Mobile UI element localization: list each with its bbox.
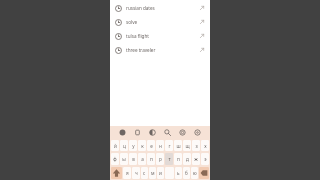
button[interactable]: и: [157, 167, 164, 179]
staticText: и: [159, 170, 162, 176]
staticText: д: [186, 156, 189, 162]
other: Insert russian dates: [199, 5, 205, 11]
button[interactable]: ж: [192, 153, 200, 165]
staticText: ы: [122, 156, 126, 162]
button[interactable]: щ: [183, 140, 191, 151]
button[interactable]: Shift: [111, 167, 122, 179]
button[interactable]: в: [129, 153, 137, 165]
staticText: ф: [113, 156, 117, 162]
button[interactable]: ф: [111, 153, 119, 165]
staticText: в: [132, 156, 135, 162]
button[interactable]: russian dates: [110, 1, 210, 15]
staticText: ч: [135, 170, 138, 176]
button[interactable]: Theme: [147, 127, 158, 138]
staticText: tulsa flight: [126, 33, 149, 39]
button[interactable]: с: [141, 167, 148, 179]
button[interactable]: ч: [132, 167, 140, 179]
button[interactable]: у: [129, 140, 137, 151]
button[interactable]: ы: [120, 153, 128, 165]
staticText: т: [168, 156, 171, 162]
staticText: е: [150, 143, 153, 149]
button[interactable]: к: [138, 140, 146, 151]
staticText: я: [126, 170, 129, 176]
button[interactable]: х: [201, 140, 209, 151]
staticText: ю: [193, 170, 197, 176]
button[interactable]: three traveler: [110, 43, 210, 57]
other: Insert tulsa flight: [199, 33, 205, 39]
button[interactable]: я: [123, 167, 131, 179]
staticText: х: [204, 143, 207, 149]
other: Insert three traveler: [199, 47, 205, 53]
button[interactable]: ц: [120, 140, 128, 151]
staticText: ш: [176, 143, 181, 149]
button[interactable]: п: [174, 153, 182, 165]
staticText: р: [159, 156, 162, 162]
staticText: г: [168, 143, 171, 149]
button[interactable]: tulsa flight: [110, 29, 210, 43]
button[interactable]: г: [165, 140, 173, 151]
staticText: к: [141, 143, 144, 149]
button[interactable]: Emoji: [117, 127, 128, 138]
button[interactable]: т: [165, 153, 173, 165]
button[interactable]: Backspace: [199, 167, 209, 179]
staticText: russian dates: [126, 5, 155, 11]
button[interactable]: Search: [162, 127, 173, 138]
button[interactable]: э: [201, 153, 209, 165]
staticText: у: [132, 143, 135, 149]
staticText: three traveler: [126, 47, 156, 53]
staticText: щ: [185, 143, 190, 149]
button[interactable]: д: [183, 153, 191, 165]
button[interactable]: б: [183, 167, 190, 179]
staticText: solve: [126, 19, 138, 25]
staticText: м: [151, 170, 155, 176]
button[interactable]: е: [147, 140, 155, 151]
staticText: ь: [177, 170, 180, 176]
staticText: ц: [123, 143, 126, 149]
staticText: с: [143, 170, 146, 176]
button[interactable]: ь: [175, 167, 182, 179]
staticText: н: [159, 143, 162, 149]
button[interactable]: р: [156, 153, 164, 165]
other: Insert solve: [199, 19, 205, 25]
button[interactable]: п: [147, 153, 155, 165]
staticText: а: [141, 156, 144, 162]
button[interactable]: н: [156, 140, 164, 151]
button[interactable]: Clipboard: [132, 127, 143, 138]
button[interactable]: й: [111, 140, 119, 151]
button[interactable]: ю: [191, 167, 198, 179]
button[interactable]: з: [192, 140, 200, 151]
button[interactable]: solve: [110, 15, 210, 29]
button[interactable]: м: [149, 167, 156, 179]
button[interactable]: а: [138, 153, 146, 165]
staticText: ж: [194, 156, 198, 162]
staticText: й: [114, 143, 117, 149]
button[interactable]: ш: [174, 140, 182, 151]
staticText: п: [177, 156, 180, 162]
button[interactable]: Stickers: [177, 127, 188, 138]
staticText: б: [185, 170, 188, 176]
staticText: э: [204, 156, 207, 162]
button[interactable]: Settings: [192, 127, 203, 138]
staticText: з: [195, 143, 198, 149]
staticText: п: [150, 156, 153, 162]
